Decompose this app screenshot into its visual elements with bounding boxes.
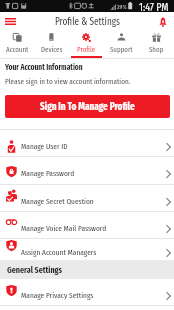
- button[interactable]: Menu: [1, 12, 20, 31]
- button[interactable]: Assign Account Managers: [0, 239, 174, 261]
- button[interactable]: Shop: [139, 31, 174, 58]
- staticText: Manage Secret Question: [21, 197, 160, 207]
- button[interactable]: Manage Voice Mail Password: [0, 212, 174, 240]
- staticText: Devices: [41, 45, 63, 54]
- staticText: Profile: [77, 45, 96, 54]
- staticText: Sign In To Manage Profile: [40, 101, 135, 113]
- button[interactable]: Manage Privacy Settings: [0, 280, 174, 306]
- staticText: 29%: [117, 3, 127, 10]
- button[interactable]: Manage Secret Question: [0, 185, 174, 212]
- staticText: Manage User ID: [21, 142, 160, 152]
- staticText: Profile & Settings: [55, 16, 120, 28]
- staticText: Manage Voice Mail Password: [21, 224, 160, 234]
- button[interactable]: Manage Password: [0, 157, 174, 185]
- staticText: Manage Privacy Settings: [21, 291, 160, 301]
- button[interactable]: Devices: [34, 31, 69, 58]
- button[interactable]: Notifications: [155, 14, 171, 30]
- staticText: Shop: [149, 45, 164, 54]
- staticText: Assign Account Managers: [21, 248, 160, 258]
- staticText: Please sign in to view account informati…: [5, 77, 131, 86]
- button[interactable]: Account: [0, 31, 34, 58]
- staticText: 1:47 PM: [139, 1, 169, 13]
- button[interactable]: Manage User ID: [0, 130, 174, 158]
- button[interactable]: Support: [104, 31, 139, 58]
- button[interactable]: Sign In To Manage Profile: [5, 95, 170, 118]
- staticText: Your Account Information: [5, 63, 83, 73]
- button[interactable]: Profile: [69, 31, 104, 58]
- staticText: Support: [110, 45, 133, 54]
- staticText: Account: [6, 45, 29, 54]
- staticText: General Settings: [7, 265, 62, 275]
- staticText: Manage Password: [21, 169, 160, 179]
